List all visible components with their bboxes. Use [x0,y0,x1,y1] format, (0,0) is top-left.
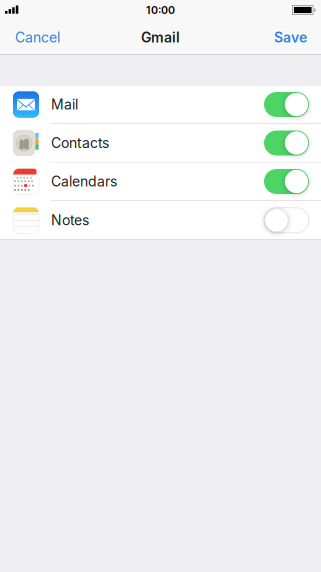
button[interactable]: Cancel [0,20,72,55]
button[interactable]: Save [262,20,321,55]
button[interactable]: Mail [0,85,321,124]
button[interactable]: Calendars [0,162,321,201]
staticText: Calendars [51,173,117,190]
staticText: Contacts [51,134,109,151]
button[interactable]: Contacts [0,124,321,162]
button[interactable]: Notes [0,201,321,239]
staticText: 10:00 [146,3,175,16]
staticText: Gmail [141,29,180,46]
staticText: Notes [51,212,89,229]
staticText: Save [274,29,307,46]
staticText: Cancel [15,29,60,46]
staticText: Mail [51,96,78,113]
